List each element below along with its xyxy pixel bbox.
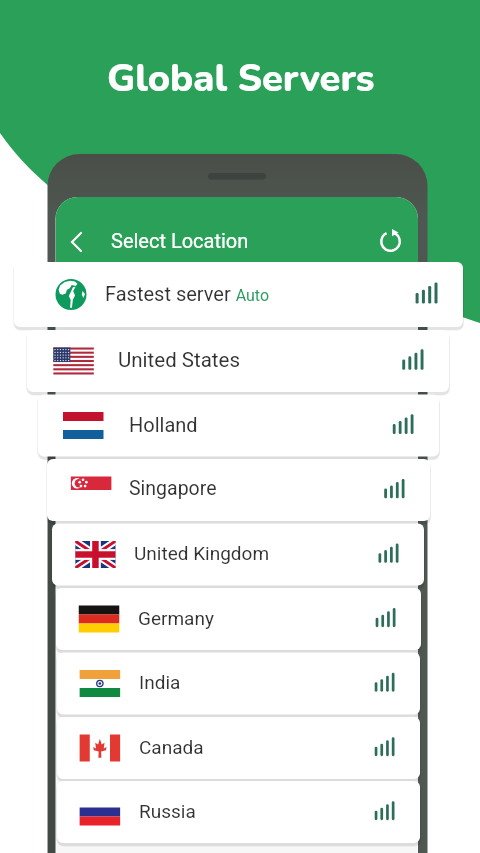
staticText: Fastest server Auto	[105, 282, 270, 305]
button[interactable]	[27, 330, 449, 392]
button[interactable]	[57, 717, 420, 779]
staticText: Germany	[138, 607, 214, 629]
button[interactable]	[47, 459, 430, 521]
staticText: United States	[118, 348, 241, 372]
button[interactable]	[38, 395, 439, 457]
staticText: Canada	[139, 736, 204, 758]
button[interactable]	[52, 524, 424, 586]
staticText: India	[139, 671, 181, 693]
staticText: Russia	[139, 800, 196, 822]
staticText: United Kingdom	[134, 542, 270, 564]
button[interactable]	[57, 653, 420, 715]
staticText: Singapore	[129, 477, 217, 500]
button[interactable]: Refresh	[377, 228, 404, 255]
button[interactable]	[14, 262, 463, 327]
staticText: Holland	[129, 413, 198, 436]
staticText: Global Servers	[107, 53, 375, 105]
button[interactable]: Back	[62, 226, 94, 258]
staticText: Select Location	[111, 229, 249, 252]
button[interactable]	[57, 781, 420, 843]
button[interactable]	[56, 588, 421, 650]
